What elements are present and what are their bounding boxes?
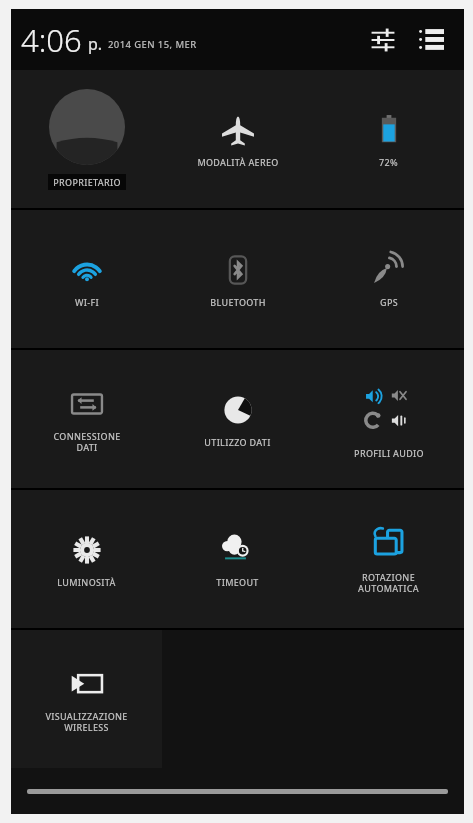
- staticText: GPS: [380, 296, 398, 308]
- staticText: PROPRIETARIO: [53, 176, 121, 188]
- button[interactable]: VISUALIZZAZIONE WIRELESS: [11, 630, 162, 768]
- button[interactable]: MODALITÀ AEREO: [162, 70, 313, 208]
- button[interactable]: 72%: [313, 70, 464, 208]
- staticText: p.: [88, 33, 103, 55]
- staticText: UTILIZZO DATI: [204, 436, 271, 448]
- staticText: LUMINOSITÀ: [57, 576, 116, 588]
- staticText: CONNESSIONE DATI: [53, 430, 121, 453]
- staticText: MODALITÀ AEREO: [197, 156, 279, 168]
- button[interactable]: ROTAZIONE AUTOMATICA: [313, 490, 464, 628]
- staticText: WI-FI: [75, 296, 99, 308]
- staticText: BLUETOOTH: [210, 296, 266, 308]
- staticText: PROFILI AUDIO: [354, 447, 424, 459]
- button[interactable]: Impostazioni: [362, 19, 404, 61]
- button[interactable]: WI-FI: [11, 210, 162, 348]
- staticText: VISUALIZZAZIONE WIRELESS: [45, 710, 128, 733]
- button[interactable]: CONNESSIONE DATI: [11, 350, 162, 488]
- staticText: 72%: [379, 156, 398, 168]
- button[interactable]: Chiudi pannello: [27, 789, 448, 794]
- button[interactable]: GPS: [313, 210, 464, 348]
- button[interactable]: LUMINOSITÀ: [11, 490, 162, 628]
- staticText: 4:06: [21, 19, 82, 61]
- button[interactable]: PROFILI AUDIO: [313, 350, 464, 488]
- button[interactable]: Notifiche: [410, 19, 452, 61]
- staticText: TIMEOUT: [216, 576, 259, 588]
- button[interactable]: BLUETOOTH: [162, 210, 313, 348]
- staticText: ROTAZIONE AUTOMATICA: [358, 571, 419, 594]
- button[interactable]: PROPRIETARIO: [11, 70, 162, 208]
- staticText: 2014 GEN 15, MER: [108, 38, 197, 51]
- button[interactable]: UTILIZZO DATI: [162, 350, 313, 488]
- button[interactable]: TIMEOUT: [162, 490, 313, 628]
